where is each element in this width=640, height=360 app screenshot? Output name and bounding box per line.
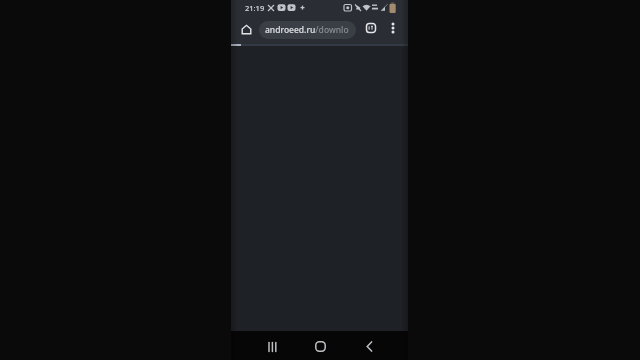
button[interactable]: androeed.ru/downlo bbox=[259, 21, 356, 39]
staticText: androeed.ru/downlo bbox=[265, 24, 349, 36]
button[interactable] bbox=[385, 20, 400, 36]
button[interactable] bbox=[363, 20, 379, 36]
button[interactable] bbox=[258, 333, 286, 360]
staticText: 21:19 bbox=[245, 3, 265, 13]
button[interactable] bbox=[306, 333, 334, 360]
button[interactable] bbox=[238, 21, 255, 38]
button[interactable] bbox=[355, 333, 383, 360]
